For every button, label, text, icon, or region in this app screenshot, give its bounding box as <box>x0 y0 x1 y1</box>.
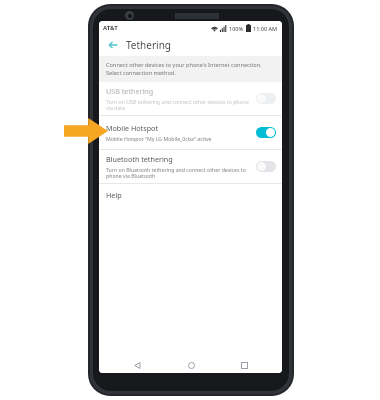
staticText: USB tethering <box>106 86 154 96</box>
staticText: AT&T <box>103 24 118 32</box>
button[interactable]: Mobile Hotspot <box>99 116 282 149</box>
button[interactable]: Recent apps <box>229 358 259 373</box>
staticText: Turn on Bluetooth tethering and connect … <box>106 166 251 180</box>
staticText: Tethering <box>126 38 171 52</box>
button[interactable]: Toggle <box>256 93 276 104</box>
button[interactable]: Toggle <box>256 127 276 138</box>
button[interactable]: Home <box>176 358 206 373</box>
staticText: 100% <box>229 25 244 32</box>
staticText: Turn on USB tethering and connect other … <box>106 98 251 112</box>
button[interactable]: Toggle <box>256 161 276 172</box>
staticText: Bluetooth tethering <box>106 154 173 164</box>
staticText: Mobile Hotspot "My LG Mobile_0cba" activ… <box>106 135 212 142</box>
staticText: Help <box>106 190 122 200</box>
button[interactable]: Back <box>122 358 152 373</box>
button[interactable]: USB tethering <box>99 82 282 115</box>
button[interactable]: Help <box>99 184 282 206</box>
staticText: Mobile Hotspot <box>106 123 158 133</box>
staticText: Connect other devices to your phone's In… <box>106 61 275 77</box>
button[interactable]: Bluetooth tethering <box>99 150 282 183</box>
staticText: 11:00 AM <box>253 25 278 32</box>
button[interactable]: Back <box>105 37 121 53</box>
